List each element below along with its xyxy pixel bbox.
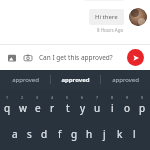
button[interactable]: approved bbox=[51, 70, 100, 89]
button[interactable]: h bbox=[82, 121, 97, 146]
staticText: Can I get this approved? bbox=[39, 53, 113, 62]
staticText: y bbox=[80, 101, 86, 115]
staticText: approved bbox=[61, 76, 90, 84]
button[interactable]: 8 bbox=[105, 93, 120, 118]
button[interactable]: Send bbox=[127, 49, 144, 66]
staticText: 7 bbox=[96, 95, 99, 100]
button[interactable]: approved bbox=[101, 70, 150, 89]
button[interactable]: approved bbox=[0, 70, 50, 89]
staticText: w bbox=[19, 101, 27, 115]
button[interactable]: 2 bbox=[15, 93, 30, 118]
staticText: d bbox=[41, 127, 48, 141]
staticText: k bbox=[117, 127, 123, 141]
staticText: r bbox=[50, 101, 55, 115]
staticText: approved bbox=[112, 76, 139, 84]
staticText: 0 bbox=[141, 95, 144, 100]
button[interactable]: Contact avatar bbox=[129, 8, 147, 26]
button[interactable]: Take photo bbox=[21, 51, 35, 65]
staticText: 5 bbox=[66, 95, 69, 100]
staticText: o bbox=[124, 101, 131, 115]
button[interactable]: 3 bbox=[30, 93, 45, 118]
staticText: t bbox=[66, 101, 70, 115]
staticText: f bbox=[58, 127, 62, 141]
staticText: 4 bbox=[51, 95, 54, 100]
staticText: j bbox=[103, 127, 106, 141]
button[interactable]: l bbox=[127, 121, 142, 146]
button[interactable]: 5 bbox=[60, 93, 75, 118]
button[interactable]: g bbox=[67, 121, 82, 146]
staticText: a bbox=[12, 127, 18, 141]
staticText: h bbox=[86, 127, 93, 141]
button[interactable]: 4 bbox=[45, 93, 60, 118]
staticText: i bbox=[111, 101, 114, 115]
staticText: 1 bbox=[6, 95, 9, 100]
staticText: s bbox=[27, 127, 32, 141]
staticText: l bbox=[133, 127, 136, 141]
staticText: 3 bbox=[36, 95, 39, 100]
button[interactable]: a bbox=[7, 121, 22, 146]
staticText: u bbox=[94, 101, 101, 115]
button[interactable]: f bbox=[52, 121, 67, 146]
staticText: 2 bbox=[21, 95, 24, 100]
button[interactable]: Can I get this approved? bbox=[39, 45, 127, 70]
staticText: 8 bbox=[111, 95, 114, 100]
staticText: p bbox=[139, 101, 146, 115]
button[interactable]: 6 bbox=[75, 93, 90, 118]
button[interactable]: Attach image bbox=[5, 51, 19, 65]
staticText: 8 Hours Ago bbox=[97, 27, 124, 33]
staticText: g bbox=[71, 127, 78, 141]
button[interactable]: 9 bbox=[120, 93, 135, 118]
staticText: 9 bbox=[126, 95, 129, 100]
button[interactable]: 7 bbox=[90, 93, 105, 118]
button[interactable]: j bbox=[97, 121, 112, 146]
staticText: Hi there bbox=[95, 13, 118, 21]
button[interactable]: k bbox=[112, 121, 127, 146]
button[interactable]: 1 bbox=[0, 93, 15, 118]
staticText: q bbox=[4, 101, 11, 115]
staticText: 6 bbox=[81, 95, 84, 100]
staticText: approved bbox=[12, 76, 39, 84]
button[interactable]: 0 bbox=[135, 93, 150, 118]
button[interactable]: d bbox=[37, 121, 52, 146]
staticText: e bbox=[35, 101, 41, 115]
button[interactable]: s bbox=[22, 121, 37, 146]
button[interactable]: Hi there bbox=[89, 9, 124, 25]
